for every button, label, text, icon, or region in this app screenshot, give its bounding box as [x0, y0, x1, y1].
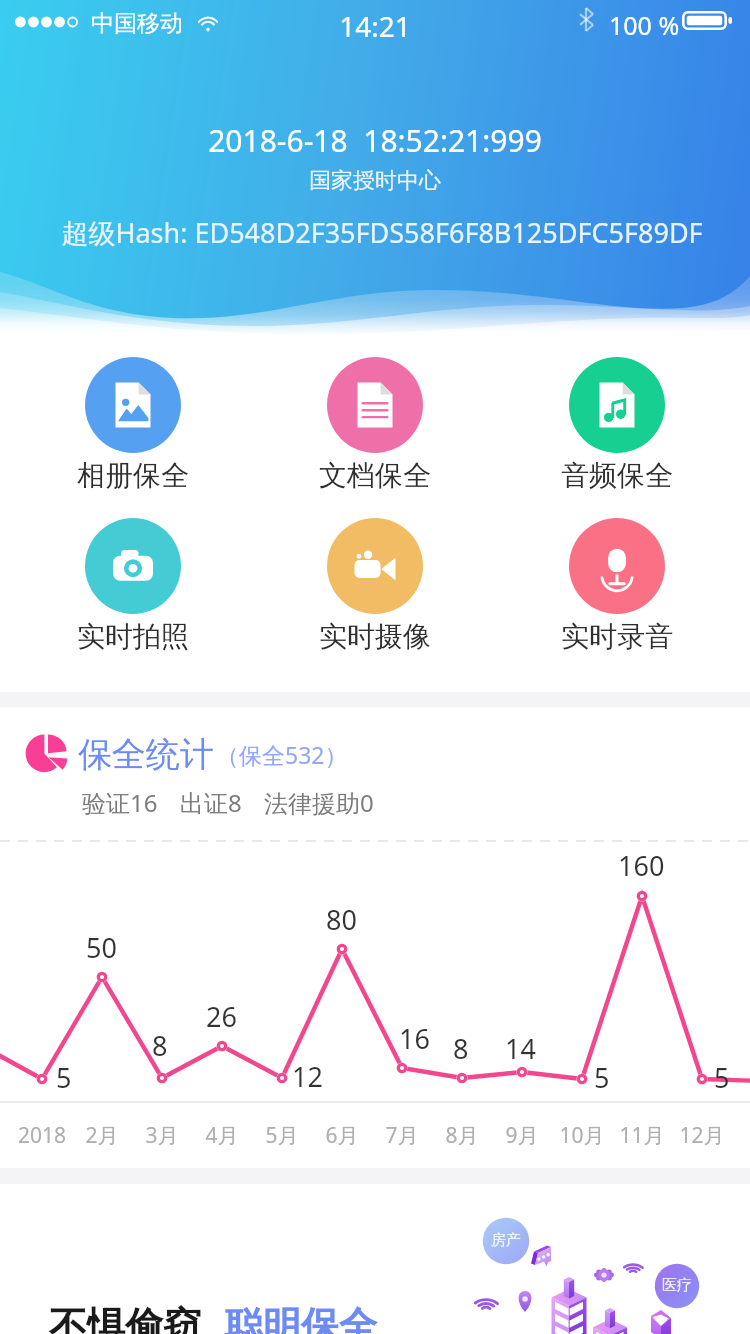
- staticText: 16: [399, 1020, 430, 1057]
- staticText: 不惧偷窃: [49, 1302, 201, 1334]
- staticText: 12: [292, 1058, 323, 1095]
- staticText: 实时录音: [561, 619, 673, 654]
- staticText: 6月: [312, 1121, 372, 1150]
- staticText: 8: [152, 1027, 168, 1064]
- staticText: 50: [86, 929, 117, 966]
- staticText: 10月: [552, 1121, 612, 1150]
- staticText: 14:21: [0, 7, 750, 45]
- button[interactable]: 实时录音: [496, 518, 738, 654]
- button[interactable]: 文档保全: [254, 357, 496, 493]
- button[interactable]: 实时拍照: [12, 518, 254, 654]
- staticText: 相册保全: [77, 458, 189, 493]
- staticText: 法律援助0: [264, 786, 374, 819]
- staticText: 8: [453, 1030, 469, 1067]
- staticText: 聪明保全: [225, 1302, 377, 1334]
- staticText: 2018-6-18 18:52:21:999: [0, 120, 750, 161]
- staticText: 文档保全: [319, 458, 431, 493]
- staticText: 出证8: [180, 786, 242, 819]
- staticText: 9月: [492, 1121, 552, 1150]
- staticText: 3月: [132, 1121, 192, 1150]
- button[interactable]: 相册保全: [12, 357, 254, 493]
- staticText: 音频保全: [561, 458, 673, 493]
- staticText: 超级Hash: ED548D2F35FDS58F6F8B125DFC5F89DF: [7, 214, 750, 251]
- staticText: 国家授时中心: [0, 167, 750, 195]
- staticText: 2018: [12, 1121, 72, 1150]
- staticText: 房产: [491, 1231, 521, 1250]
- staticText: 7月: [372, 1121, 432, 1150]
- button[interactable]: 房产: [0, 1184, 750, 1334]
- staticText: 验证16: [82, 786, 158, 819]
- button[interactable]: 实时摄像: [254, 518, 496, 654]
- staticText: 4月: [192, 1121, 252, 1150]
- staticText: 保全统计: [78, 733, 214, 776]
- staticText: 14: [505, 1030, 536, 1067]
- staticText: 5: [594, 1059, 610, 1096]
- staticText: 医疗: [662, 1276, 692, 1295]
- button[interactable]: 保全统计: [0, 707, 750, 776]
- staticText: 100 %: [609, 8, 680, 42]
- staticText: 8月: [432, 1121, 492, 1150]
- staticText: 11月: [612, 1121, 672, 1150]
- staticText: 实时拍照: [77, 619, 189, 654]
- staticText: 26: [206, 998, 237, 1035]
- staticText: 80: [326, 901, 357, 938]
- staticText: 中国移动: [91, 9, 183, 38]
- button[interactable]: 音频保全: [496, 357, 738, 493]
- staticText: 实时摄像: [319, 619, 431, 654]
- staticText: （保全532）: [216, 739, 348, 770]
- staticText: 5月: [252, 1121, 312, 1150]
- staticText: 160: [618, 847, 665, 884]
- staticText: 5: [714, 1059, 730, 1096]
- staticText: 5: [56, 1059, 72, 1096]
- staticText: 2月: [72, 1121, 132, 1150]
- staticText: 12月: [672, 1121, 732, 1150]
